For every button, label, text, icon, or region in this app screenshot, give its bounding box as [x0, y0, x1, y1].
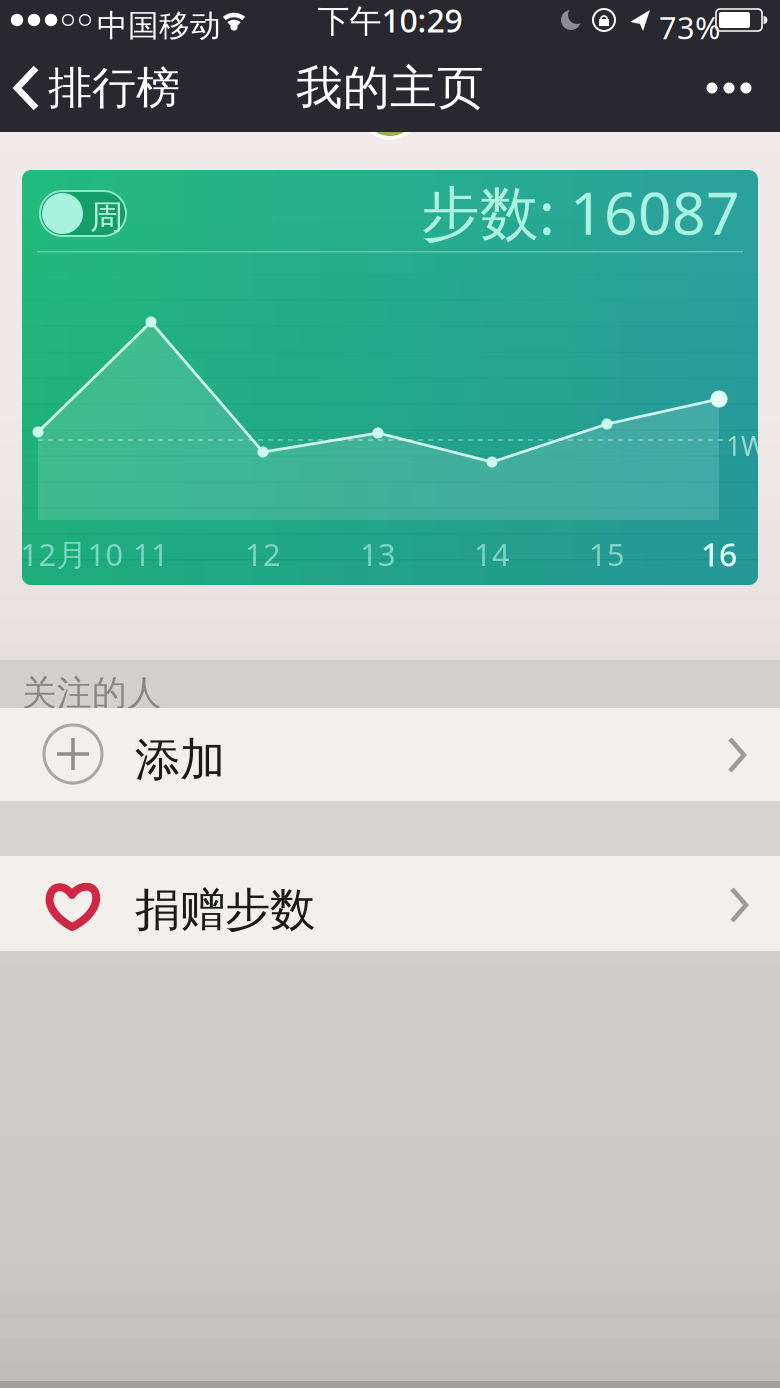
staticText: 我的主页: [296, 59, 484, 117]
button[interactable]: 捐赠步数: [0, 856, 780, 951]
staticText: 11: [133, 534, 169, 574]
staticText: 排行榜: [48, 61, 180, 115]
button[interactable]: 按周查看: [40, 191, 126, 236]
button[interactable]: 返回排行榜: [14, 64, 180, 112]
button[interactable]: 更多: [0, 64, 70, 112]
staticText: 1W: [726, 428, 766, 463]
staticText: 16: [701, 533, 737, 575]
staticText: 捐赠步数: [135, 882, 315, 938]
staticText: 13: [360, 534, 396, 574]
staticText: 中国移动: [97, 7, 221, 45]
button[interactable]: 添加: [0, 709, 780, 802]
staticText: 关注的人: [22, 672, 162, 715]
staticText: 添加: [135, 732, 225, 788]
staticText: 12月10: [20, 534, 123, 574]
staticText: 15: [589, 534, 625, 574]
staticText: 12: [245, 534, 281, 574]
staticText: 下午10:29: [317, 0, 462, 41]
staticText: 73%: [659, 7, 720, 48]
staticText: 周: [90, 197, 123, 238]
staticText: 14: [474, 534, 510, 574]
staticText: 步数: 16087: [421, 173, 740, 251]
